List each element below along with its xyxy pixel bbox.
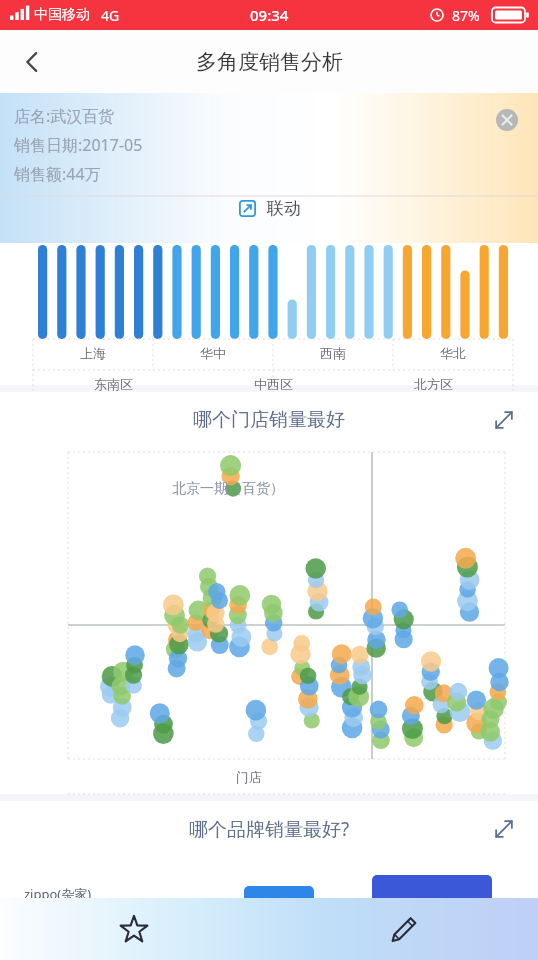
staticText: 中国移动 bbox=[34, 6, 90, 24]
staticText: 中西区 bbox=[254, 376, 293, 392]
staticText: 销售日期:2017-05 bbox=[14, 134, 143, 156]
staticText: 华中 bbox=[200, 345, 226, 361]
staticText: 多角度销售分析 bbox=[196, 49, 343, 75]
staticText: 华北 bbox=[440, 345, 466, 361]
staticText: 店名:武汉百货 bbox=[14, 105, 115, 127]
staticText: 北方区 bbox=[414, 376, 453, 392]
staticText: 4G bbox=[101, 6, 120, 25]
button[interactable]: Expand chart bbox=[484, 400, 524, 440]
staticText: 09:34 bbox=[250, 5, 289, 25]
staticText: zippo(杂家) bbox=[24, 885, 92, 903]
staticText: 上海 bbox=[80, 345, 106, 361]
button[interactable]: Favorite bbox=[108, 903, 160, 955]
staticText: 北京一期（百货） bbox=[172, 480, 284, 498]
staticText: 西南 bbox=[320, 345, 346, 361]
button[interactable]: Back bbox=[8, 38, 56, 86]
staticText: 联动 bbox=[267, 198, 301, 219]
button[interactable]: Edit bbox=[378, 903, 430, 955]
staticText: 哪个品牌销量最好? bbox=[189, 816, 350, 842]
staticText: 87% bbox=[452, 6, 480, 25]
button[interactable]: 联动 bbox=[224, 192, 315, 225]
staticText: 销售额:44万 bbox=[14, 163, 101, 185]
staticText: 哪个门店销量最好 bbox=[193, 408, 345, 432]
staticText: 门店 bbox=[236, 769, 262, 785]
button[interactable]: Expand chart bbox=[484, 809, 524, 849]
button[interactable]: Close bbox=[492, 105, 522, 135]
staticText: 东南区 bbox=[94, 376, 133, 392]
